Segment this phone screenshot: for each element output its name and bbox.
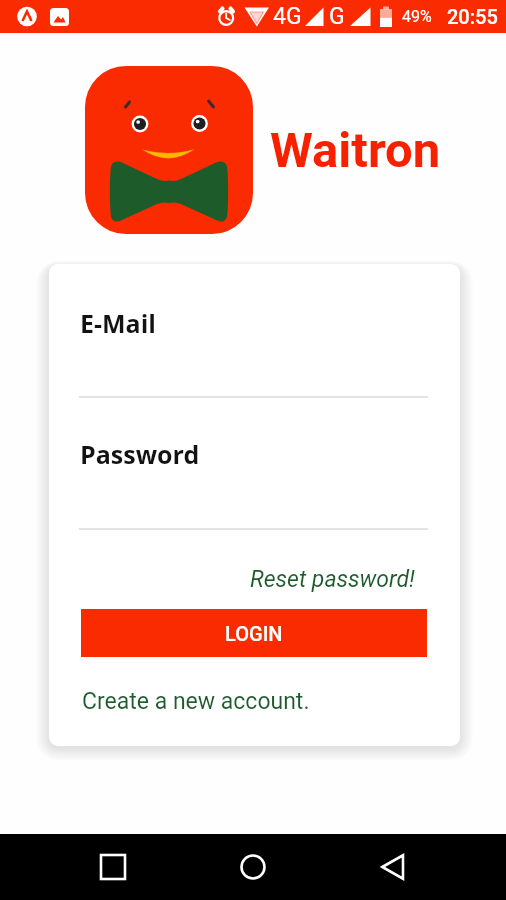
button[interactable]: Create a new account.: [82, 688, 310, 715]
button[interactable]: LOGIN: [81, 609, 427, 657]
button[interactable]: Reset password!: [250, 566, 415, 593]
button[interactable]: Password: [80, 437, 200, 471]
staticText: G: [329, 3, 345, 30]
button[interactable]: Home: [229, 843, 276, 890]
staticText: 20:55: [447, 5, 498, 28]
button[interactable]: Recent apps: [89, 843, 136, 890]
staticText: 4G: [273, 3, 302, 30]
staticText: 49%: [402, 7, 432, 26]
button[interactable]: E-Mail: [80, 306, 156, 340]
staticText: Waitron: [270, 122, 441, 179]
staticText: LOGIN: [225, 622, 283, 645]
button[interactable]: Back: [370, 843, 417, 890]
